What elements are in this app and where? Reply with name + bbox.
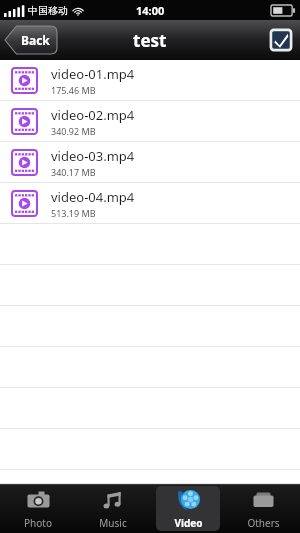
staticText: video-01.mp4 [51, 65, 135, 83]
staticText: Photo [24, 516, 52, 530]
staticText: video-03.mp4 [51, 147, 135, 165]
staticText: 175.46 MB [51, 84, 96, 96]
button[interactable]: Others [225, 484, 300, 533]
staticText: Music [99, 516, 127, 530]
staticText: test [133, 29, 167, 52]
staticText: Video [174, 516, 203, 530]
button[interactable]: Photo [0, 484, 75, 533]
staticText: 14:00 [136, 3, 165, 18]
staticText: Others [247, 516, 280, 530]
staticText: video-04.mp4 [51, 188, 135, 206]
button[interactable]: Select all [267, 26, 295, 54]
staticText: video-02.mp4 [51, 106, 135, 124]
button[interactable]: Music [75, 484, 150, 533]
staticText: 513.19 MB [51, 207, 96, 219]
button[interactable]: Back [5, 26, 57, 54]
staticText: 中国移动 [28, 4, 68, 17]
staticText: 340.17 MB [51, 166, 96, 178]
button[interactable]: video-04.mp4 [0, 183, 300, 224]
button[interactable]: video-02.mp4 [0, 101, 300, 142]
button[interactable]: video-01.mp4 [0, 60, 300, 101]
staticText: 340.92 MB [51, 125, 96, 137]
button[interactable]: Video [150, 484, 225, 533]
button[interactable]: video-03.mp4 [0, 142, 300, 183]
staticText: Back [21, 32, 50, 48]
